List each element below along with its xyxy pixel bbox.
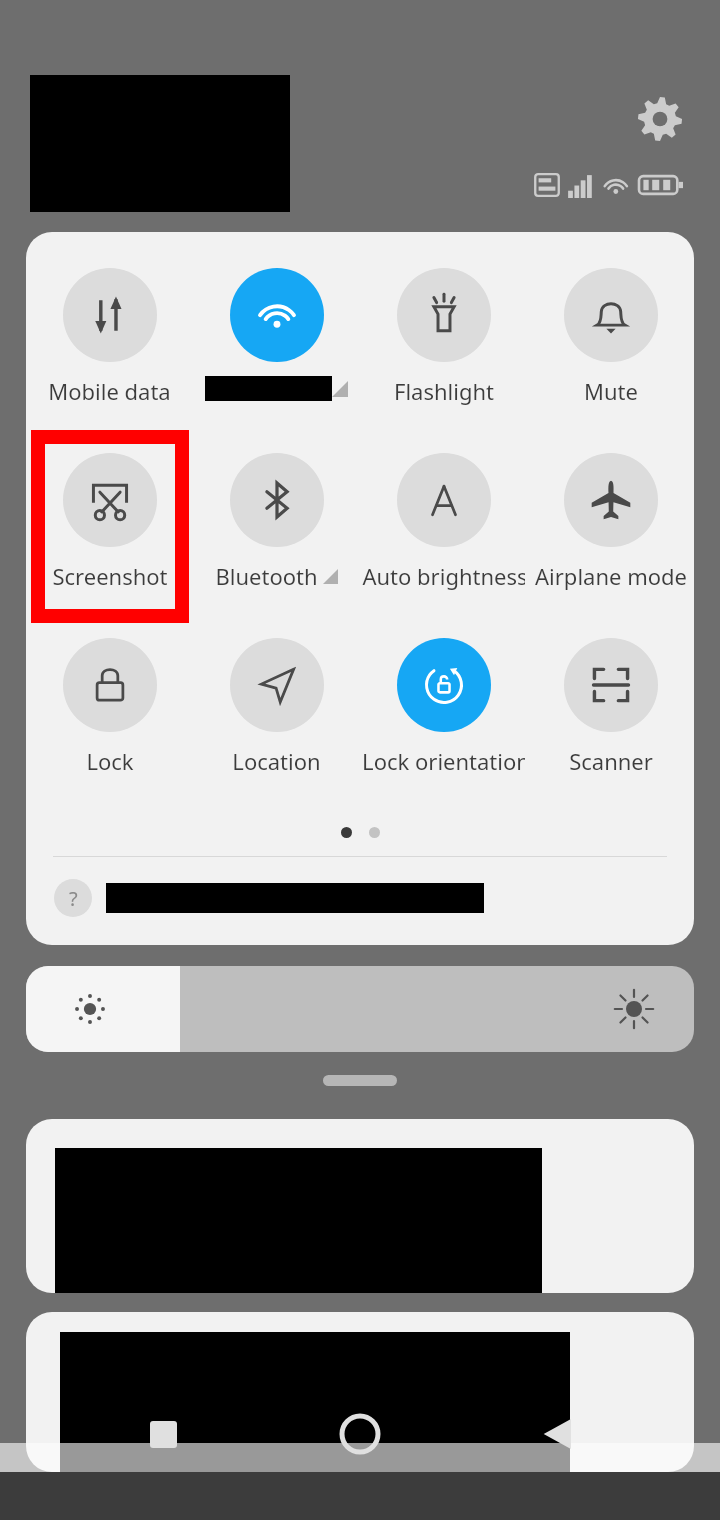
staticText: Bluetooth	[215, 561, 318, 591]
staticText: Screenshot	[52, 561, 168, 591]
button[interactable]	[26, 1312, 694, 1472]
button[interactable]: Back	[523, 1399, 593, 1469]
button[interactable]: Home	[325, 1399, 395, 1469]
button[interactable]: Lock	[28, 620, 191, 805]
button[interactable]: Brightness	[26, 966, 694, 1052]
button[interactable]	[26, 1119, 694, 1293]
button[interactable]: Mute	[529, 250, 692, 435]
button[interactable]: Help	[54, 879, 92, 917]
button[interactable]: Flashlight	[362, 250, 525, 435]
staticText: ?	[69, 885, 78, 912]
staticText: Mobile data	[48, 376, 171, 406]
button[interactable]: Airplane mode	[529, 435, 692, 620]
button[interactable]: Location	[195, 620, 358, 805]
button[interactable]	[195, 250, 358, 435]
staticText: Lock	[86, 746, 134, 776]
staticText: Location	[232, 746, 321, 776]
button[interactable]: Screenshot	[28, 435, 191, 620]
staticText: Lock orientation	[362, 746, 525, 776]
staticText: Scanner	[569, 746, 653, 776]
button[interactable]: Settings	[629, 88, 691, 150]
button[interactable]: Scanner	[529, 620, 692, 805]
staticText: Mute	[584, 376, 638, 406]
staticText: Airplane mode	[535, 561, 687, 591]
button[interactable]: Recents	[128, 1399, 198, 1469]
button[interactable]: Bluetooth	[195, 435, 358, 620]
button[interactable]: Lock orientation	[362, 620, 525, 805]
staticText: Auto brightness	[362, 561, 525, 591]
button[interactable]: Mobile data	[28, 250, 191, 435]
button[interactable]: Auto brightness	[362, 435, 525, 620]
staticText: Flashlight	[394, 376, 494, 406]
